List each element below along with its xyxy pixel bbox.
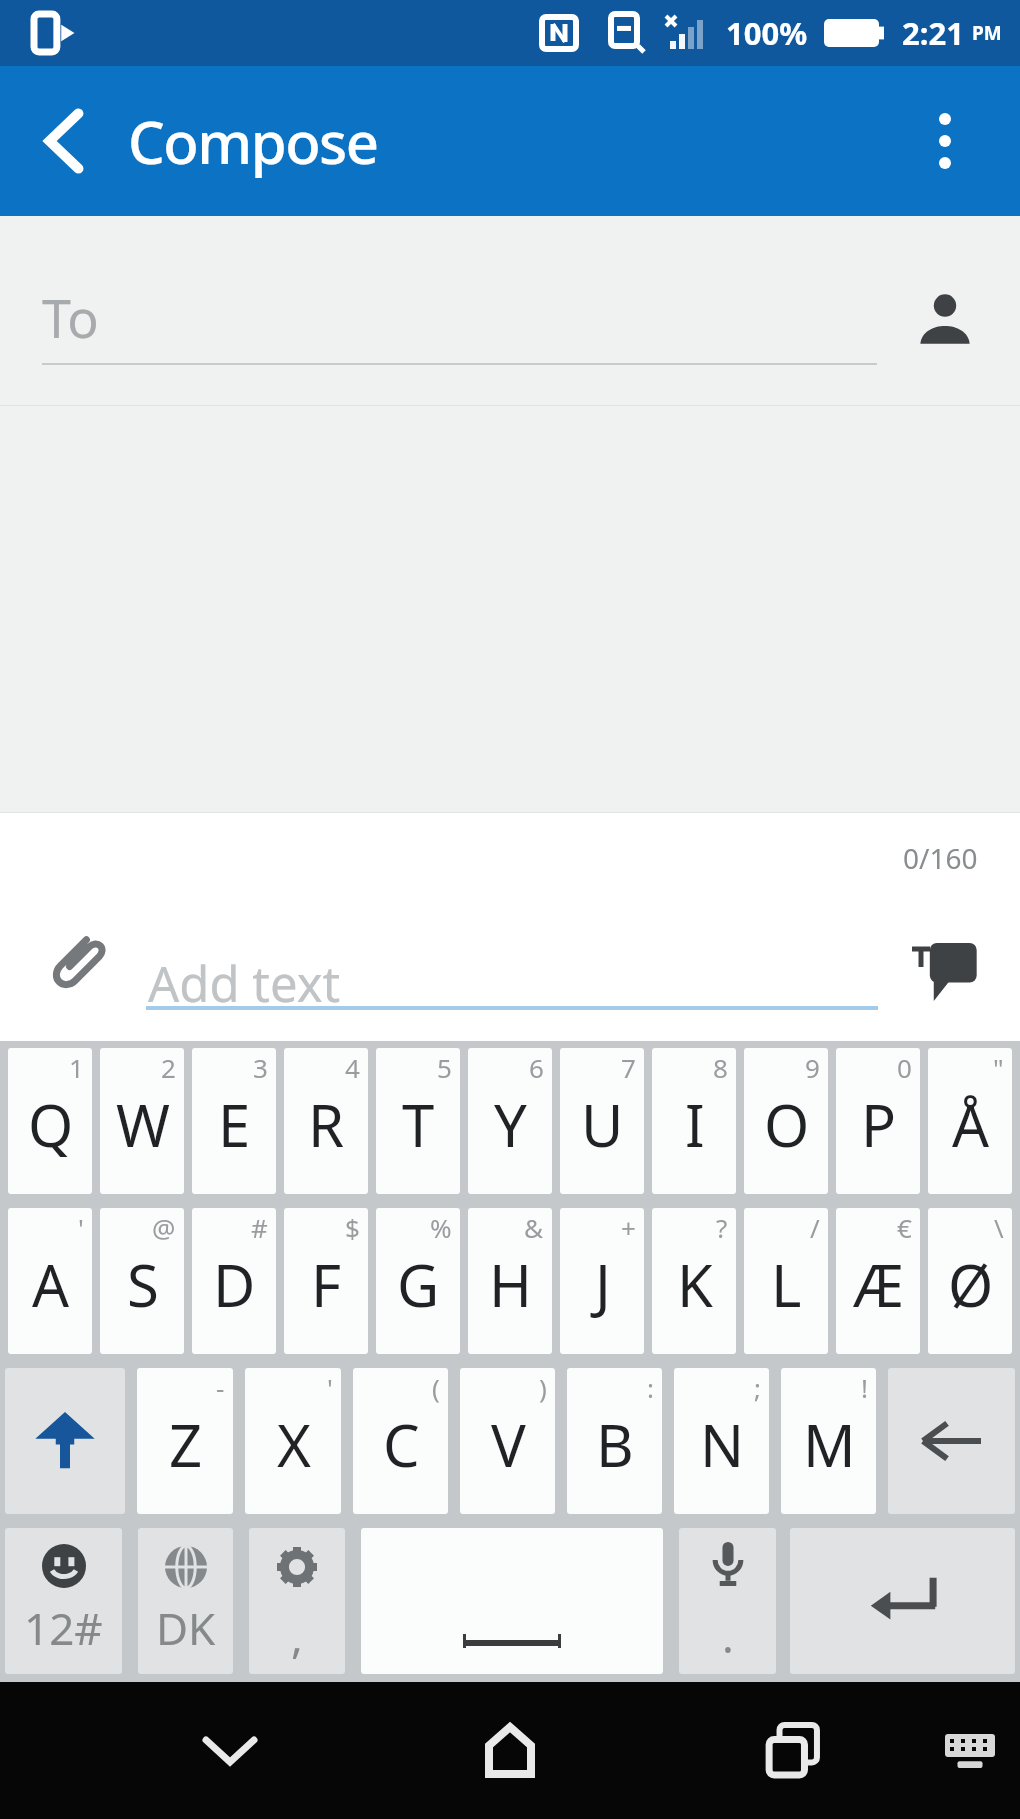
- button[interactable]: 12#: [5, 1528, 122, 1674]
- button[interactable]: X: [245, 1368, 341, 1514]
- button[interactable]: .: [679, 1528, 776, 1674]
- staticText: B: [596, 1405, 633, 1484]
- button[interactable]: K: [652, 1208, 736, 1354]
- staticText: :: [647, 1370, 654, 1405]
- staticText: T: [402, 1085, 434, 1164]
- staticText: R: [308, 1085, 344, 1164]
- button[interactable]: DK: [138, 1528, 233, 1674]
- staticText: 100%: [726, 12, 808, 54]
- button[interactable]: W: [100, 1048, 184, 1194]
- button[interactable]: Å: [928, 1048, 1012, 1194]
- staticText: 9: [805, 1050, 820, 1085]
- button[interactable]: Y: [468, 1048, 552, 1194]
- staticText: C: [383, 1405, 419, 1484]
- staticText: @: [152, 1210, 176, 1245]
- button[interactable]: [146, 941, 878, 1010]
- staticText: \: [994, 1210, 1004, 1245]
- button[interactable]: V: [460, 1368, 555, 1514]
- staticText: J: [595, 1245, 610, 1324]
- button[interactable]: H: [468, 1208, 552, 1354]
- staticText: A: [32, 1245, 69, 1324]
- button[interactable]: F: [284, 1208, 368, 1354]
- staticText: 7: [621, 1050, 636, 1085]
- button[interactable]: [170, 1682, 290, 1819]
- button[interactable]: [888, 1368, 1015, 1514]
- button[interactable]: [42, 274, 877, 369]
- staticText: H: [489, 1245, 531, 1324]
- staticText: /: [810, 1210, 820, 1245]
- button[interactable]: U: [560, 1048, 644, 1194]
- staticText: DK: [156, 1598, 216, 1658]
- button[interactable]: R: [284, 1048, 368, 1194]
- button[interactable]: [790, 1528, 1015, 1674]
- staticText: 0: [897, 1050, 912, 1085]
- button[interactable]: G: [376, 1208, 460, 1354]
- button[interactable]: J: [560, 1208, 644, 1354]
- button[interactable]: [450, 1682, 570, 1819]
- button[interactable]: Z: [137, 1368, 233, 1514]
- button[interactable]: [5, 1368, 125, 1514]
- button[interactable]: ,: [249, 1528, 345, 1674]
- staticText: D: [213, 1245, 255, 1324]
- staticText: Add text: [148, 950, 341, 1017]
- staticText: &: [524, 1210, 544, 1245]
- staticText: ': [78, 1210, 84, 1245]
- staticText: 8: [713, 1050, 728, 1085]
- staticText: N: [700, 1405, 744, 1484]
- staticText: $: [345, 1210, 360, 1245]
- staticText: +: [621, 1210, 636, 1245]
- staticText: To: [42, 282, 99, 353]
- staticText: %: [430, 1210, 452, 1245]
- button[interactable]: [912, 939, 978, 1005]
- button[interactable]: D: [192, 1208, 276, 1354]
- button[interactable]: Æ: [836, 1208, 920, 1354]
- staticText: .: [722, 1606, 734, 1666]
- button[interactable]: [20, 97, 108, 185]
- staticText: Z: [169, 1405, 202, 1484]
- button[interactable]: L: [744, 1208, 828, 1354]
- staticText: Compose: [128, 102, 378, 181]
- button[interactable]: [916, 290, 974, 348]
- button[interactable]: C: [353, 1368, 448, 1514]
- staticText: M: [803, 1405, 855, 1484]
- button[interactable]: Ø: [928, 1208, 1012, 1354]
- staticText: I: [685, 1085, 704, 1164]
- button[interactable]: N: [674, 1368, 769, 1514]
- staticText: K: [677, 1245, 712, 1324]
- staticText: X: [277, 1405, 310, 1484]
- button[interactable]: I: [652, 1048, 736, 1194]
- button[interactable]: [905, 66, 985, 216]
- staticText: 2:21: [902, 12, 972, 54]
- staticText: ': [327, 1370, 333, 1405]
- staticText: F: [311, 1245, 341, 1324]
- button[interactable]: [930, 1682, 1010, 1819]
- staticText: Q: [28, 1085, 73, 1164]
- button[interactable]: [42, 929, 112, 999]
- button[interactable]: A: [8, 1208, 92, 1354]
- staticText: Å: [952, 1085, 989, 1164]
- button[interactable]: P: [836, 1048, 920, 1194]
- staticText: W: [116, 1085, 169, 1164]
- button[interactable]: O: [744, 1048, 828, 1194]
- staticText: 6: [529, 1050, 544, 1085]
- button[interactable]: E: [192, 1048, 276, 1194]
- staticText: 3: [253, 1050, 268, 1085]
- staticText: S: [127, 1245, 158, 1324]
- staticText: G: [397, 1245, 439, 1324]
- staticText: ": [993, 1050, 1004, 1085]
- staticText: (: [432, 1370, 440, 1405]
- staticText: Ø: [948, 1245, 993, 1324]
- staticText: ?: [716, 1210, 728, 1245]
- staticText: ;: [754, 1370, 761, 1405]
- staticText: #: [251, 1210, 268, 1245]
- staticText: !: [861, 1370, 868, 1405]
- button[interactable]: [361, 1528, 663, 1674]
- button[interactable]: T: [376, 1048, 460, 1194]
- button[interactable]: S: [100, 1208, 184, 1354]
- button[interactable]: [732, 1682, 852, 1819]
- staticText: 0/160: [903, 839, 978, 877]
- button[interactable]: B: [567, 1368, 662, 1514]
- button[interactable]: Q: [8, 1048, 92, 1194]
- staticText: 4: [345, 1050, 360, 1085]
- button[interactable]: M: [781, 1368, 876, 1514]
